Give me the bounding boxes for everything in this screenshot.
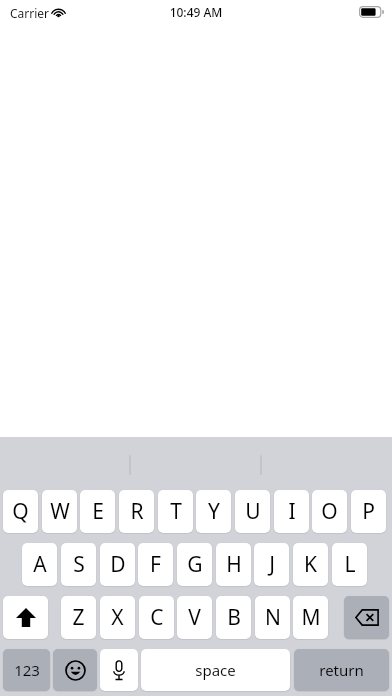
staticText: space (195, 660, 236, 680)
button[interactable]: D (100, 543, 135, 586)
staticText: H (226, 550, 242, 579)
staticText: 10:49 AM (0, 4, 392, 20)
button[interactable]: C (139, 596, 174, 639)
button[interactable]: return (294, 649, 389, 691)
button[interactable]: G (177, 543, 212, 586)
button[interactable]: Emoji (53, 649, 97, 691)
button[interactable]: X (100, 596, 135, 639)
staticText: T (170, 497, 182, 526)
staticText: U (245, 497, 261, 526)
button[interactable]: U (235, 490, 270, 533)
button[interactable]: M (293, 596, 328, 639)
staticText: D (110, 550, 126, 579)
button[interactable]: S (61, 543, 96, 586)
button[interactable]: P (351, 490, 386, 533)
staticText: J (269, 550, 275, 579)
staticText: A (33, 550, 47, 579)
button[interactable]: B (216, 596, 251, 639)
staticText: L (344, 550, 356, 579)
button[interactable]: Dictate (100, 649, 138, 691)
button[interactable]: E (80, 490, 115, 533)
button[interactable]: Z (61, 596, 96, 639)
staticText: M (301, 603, 321, 632)
button[interactable]: W (42, 490, 77, 533)
button[interactable]: L (332, 543, 367, 586)
button[interactable]: F (138, 543, 173, 586)
staticText: Y (208, 497, 220, 526)
staticText: B (227, 603, 241, 632)
button[interactable]: space (141, 649, 290, 691)
button[interactable]: J (254, 543, 289, 586)
staticText: R (130, 497, 144, 526)
staticText: Z (72, 603, 85, 632)
staticText: V (188, 603, 201, 632)
button[interactable]: Shift (3, 596, 48, 639)
staticText: N (265, 603, 281, 632)
button[interactable]: I (274, 490, 309, 533)
staticText: Carrier (10, 5, 50, 21)
button[interactable]: V (177, 596, 212, 639)
staticText: Q (12, 497, 29, 526)
button[interactable]: H (216, 543, 251, 586)
staticText: O (321, 497, 338, 526)
button[interactable]: Delete (344, 596, 389, 639)
staticText: F (150, 550, 161, 579)
button[interactable]: T (158, 490, 193, 533)
staticText: S (73, 550, 85, 579)
staticText: C (150, 603, 164, 632)
staticText: 123 (14, 660, 40, 680)
button[interactable]: R (119, 490, 154, 533)
button[interactable]: 123 (3, 649, 50, 691)
staticText: P (362, 497, 375, 526)
staticText: I (288, 497, 296, 526)
staticText: X (111, 603, 124, 632)
staticText: return (319, 660, 364, 680)
staticText: K (304, 550, 317, 579)
staticText: W (50, 497, 70, 526)
button[interactable]: Q (3, 490, 38, 533)
staticText: E (92, 497, 104, 526)
button[interactable]: N (255, 596, 290, 639)
button[interactable]: Y (196, 490, 231, 533)
button[interactable]: A (22, 543, 57, 586)
button[interactable]: O (312, 490, 347, 533)
button[interactable]: K (293, 543, 328, 586)
staticText: G (187, 550, 203, 579)
